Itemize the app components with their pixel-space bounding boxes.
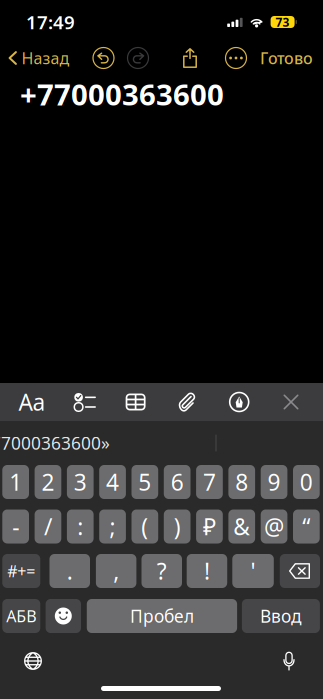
button[interactable]: Checklist [66, 383, 102, 421]
button[interactable]: ; [99, 509, 126, 543]
button[interactable]: ₽ [196, 509, 223, 543]
staticText: ; [109, 511, 115, 541]
button[interactable]: 0 [293, 465, 320, 499]
button[interactable]: Markup [221, 383, 257, 421]
staticText: АБВ [6, 605, 36, 627]
staticText: 0 [300, 467, 313, 497]
staticText: 8 [235, 467, 248, 497]
button[interactable]: 8 [228, 465, 255, 499]
button[interactable]: Share [182, 48, 198, 68]
staticText: - [12, 511, 19, 541]
button[interactable]: Switch keyboard [15, 643, 51, 679]
staticText: #+= [7, 560, 35, 582]
staticText: 73 [276, 14, 290, 30]
button[interactable]: , [96, 554, 136, 588]
button[interactable]: Attach file [169, 383, 205, 421]
button[interactable]: Пробел [87, 599, 237, 633]
button[interactable]: @ [261, 509, 287, 543]
button[interactable]: / [35, 509, 61, 543]
staticText: 9 [268, 467, 281, 497]
button[interactable]: 6 [164, 465, 190, 499]
staticText: 17:49 [26, 10, 75, 34]
button[interactable]: Delete [280, 554, 320, 588]
staticText: 2 [41, 467, 54, 497]
staticText: +77000363600 [20, 74, 224, 113]
staticText: 6 [171, 467, 184, 497]
staticText: & [233, 511, 250, 541]
button[interactable]: Ввод [242, 599, 320, 633]
button[interactable]: “ [293, 509, 320, 543]
staticText: ) [174, 511, 181, 541]
staticText: 4 [106, 467, 119, 497]
button[interactable]: Undo [91, 46, 115, 70]
button[interactable]: 1 [2, 465, 29, 499]
button[interactable]: More [224, 46, 248, 70]
staticText: Aa [18, 387, 45, 417]
button[interactable]: ? [141, 554, 182, 588]
button[interactable]: Table [118, 383, 154, 421]
staticText: Назад [21, 47, 69, 69]
button[interactable]: ! [187, 554, 227, 588]
staticText: Готово [260, 47, 313, 69]
staticText: ? [157, 556, 167, 586]
button[interactable]: «77000363600» [0, 421, 110, 465]
staticText: , [113, 556, 119, 586]
staticText: 5 [138, 467, 151, 497]
staticText: / [44, 511, 52, 541]
button[interactable]: 2 [35, 465, 61, 499]
staticText: ( [141, 511, 148, 541]
staticText: Пробел [130, 604, 194, 627]
button[interactable]: Назад [9, 41, 69, 75]
button[interactable]: #+= [2, 554, 40, 588]
staticText: 1 [9, 467, 22, 497]
button[interactable]: Close toolbar [273, 383, 309, 421]
button[interactable]: Redo [126, 46, 150, 70]
button[interactable]: ' [232, 554, 274, 588]
button[interactable]: & [228, 509, 255, 543]
staticText: Ввод [260, 604, 302, 627]
button[interactable]: 9 [261, 465, 287, 499]
button[interactable]: . [49, 554, 90, 588]
staticText: «77000363600» [0, 431, 110, 454]
button[interactable]: - [2, 509, 29, 543]
button[interactable]: 3 [67, 465, 94, 499]
staticText: ₽ [203, 511, 216, 541]
button[interactable]: АБВ [2, 599, 40, 633]
button[interactable]: Aa [14, 383, 50, 421]
staticText: . [67, 556, 73, 586]
staticText: @ [264, 511, 284, 541]
staticText: 3 [74, 467, 87, 497]
button[interactable]: Emoji [46, 599, 81, 633]
staticText: 7 [203, 467, 216, 497]
button[interactable]: ) [164, 509, 190, 543]
button[interactable]: ( [131, 509, 158, 543]
button[interactable]: 4 [99, 465, 126, 499]
staticText: ' [251, 556, 256, 586]
staticText: ! [204, 556, 210, 586]
button[interactable]: 7 [196, 465, 223, 499]
button[interactable]: Dictate [271, 643, 307, 679]
button[interactable]: 5 [131, 465, 158, 499]
button[interactable]: : [67, 509, 94, 543]
staticText: “ [302, 511, 310, 541]
button[interactable]: Готово [260, 41, 313, 75]
staticText: : [77, 511, 83, 541]
